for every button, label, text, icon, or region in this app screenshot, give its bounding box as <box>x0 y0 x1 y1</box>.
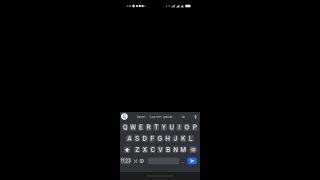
button[interactable]: : <box>145 158 147 164</box>
staticText: L <box>189 135 193 142</box>
button[interactable]: . <box>181 158 184 164</box>
button[interactable]: N <box>173 146 179 153</box>
staticText: M <box>180 146 186 154</box>
staticText: O <box>184 123 189 131</box>
button[interactable]: O <box>184 124 190 131</box>
staticText: C <box>151 146 155 154</box>
button[interactable]: F <box>149 135 155 142</box>
button[interactable]: Q <box>122 124 128 131</box>
button[interactable]: Translate <box>133 158 138 164</box>
button[interactable]: U <box>169 124 174 131</box>
button[interactable]: Shift <box>124 146 130 153</box>
button[interactable]: A <box>126 135 132 142</box>
button[interactable]: R <box>145 124 151 131</box>
staticText: P <box>193 123 197 131</box>
button[interactable]: L <box>188 135 194 142</box>
staticText: T <box>154 123 158 131</box>
button[interactable]: Backspace <box>190 146 196 153</box>
button[interactable]: D <box>142 135 148 142</box>
staticText: N <box>173 146 178 154</box>
button[interactable]: H <box>165 135 171 142</box>
button[interactable]: S <box>134 135 140 142</box>
staticText: R <box>146 123 150 131</box>
button[interactable]: P <box>192 124 198 131</box>
staticText: A <box>127 135 131 142</box>
button[interactable]: I <box>176 124 182 131</box>
button[interactable]: Emoji <box>139 158 144 164</box>
staticText: G <box>122 113 126 120</box>
staticText: I <box>178 123 180 131</box>
staticText: K <box>181 135 185 142</box>
staticText: W <box>130 123 136 131</box>
staticText: B <box>166 146 170 154</box>
staticText: J <box>173 135 177 142</box>
staticText: Q <box>123 123 128 131</box>
staticText: been <box>137 114 145 119</box>
staticText: D <box>143 135 147 142</box>
button[interactable]: J <box>172 135 178 142</box>
button[interactable]: B <box>165 146 171 153</box>
staticText: at <box>181 114 184 119</box>
staticText: G <box>157 135 162 142</box>
button[interactable]: W <box>130 124 136 131</box>
staticText: : <box>146 158 147 163</box>
staticText: V <box>158 146 162 154</box>
button[interactable]: G <box>157 135 163 142</box>
button[interactable]: V <box>157 146 163 153</box>
staticText: E <box>139 123 143 131</box>
button[interactable]: Y <box>161 124 167 131</box>
button[interactable]: Send <box>187 158 197 164</box>
button[interactable]: Google Assistant <box>121 113 128 120</box>
staticText: S <box>135 135 139 142</box>
staticText: Z <box>135 146 139 154</box>
staticText: U <box>170 123 174 131</box>
button[interactable]: at <box>173 112 193 121</box>
button[interactable]: K <box>180 135 186 142</box>
staticText: F <box>150 135 154 142</box>
button[interactable]: T <box>153 124 159 131</box>
button[interactable]: ?123 <box>121 158 131 164</box>
button[interactable]: Lorem ipsum <box>152 112 172 121</box>
staticText: Lorem ipsum <box>150 114 174 119</box>
staticText: X <box>143 146 147 154</box>
staticText: Y <box>162 123 166 131</box>
staticText: H <box>165 135 170 142</box>
button[interactable]: C <box>150 146 155 153</box>
button[interactable]: E <box>138 124 144 131</box>
button[interactable]: X <box>142 146 148 153</box>
button[interactable]: been <box>131 112 151 121</box>
button[interactable]: Voice input <box>194 114 197 119</box>
button[interactable]: Z <box>134 146 140 153</box>
staticText: . <box>182 158 183 164</box>
staticText: ?123 <box>120 158 131 163</box>
button[interactable]: M <box>180 146 186 153</box>
